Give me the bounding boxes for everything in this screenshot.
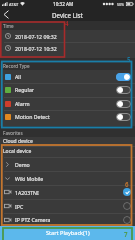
button[interactable]: Local device — [0, 146, 135, 157]
button[interactable]: Back — [0, 8, 13, 21]
staticText: 6 — [125, 180, 129, 188]
staticText: Demo — [15, 161, 30, 168]
staticText: Motion Detect — [15, 113, 50, 120]
button[interactable]: Demo — [0, 157, 135, 171]
button[interactable]: 1A203TNI — [0, 185, 135, 199]
staticText: Device List — [52, 11, 83, 19]
staticText: Alarm — [15, 100, 30, 107]
staticText: 50% — [117, 2, 125, 7]
staticText: 2018-07-12 10:32 — [15, 45, 57, 52]
staticText: 1A203TNI — [15, 189, 39, 196]
staticText: Cloud device — [3, 138, 33, 145]
staticText: 10:32 AM — [53, 1, 74, 7]
staticText: AT&T — [9, 2, 19, 7]
staticText: Favorites — [3, 130, 23, 136]
staticText: Wiki Mobile — [15, 175, 44, 182]
staticText: Start Playback(1) — [46, 229, 90, 237]
staticText: IP PTZ Camera — [15, 216, 51, 223]
staticText: Local device — [3, 148, 32, 155]
button[interactable]: 2018-07-12 10:32 — [0, 42, 135, 54]
button[interactable]: All — [0, 70, 135, 83]
button[interactable]: Start Playback(1) — [0, 226, 135, 240]
staticText: Regular — [15, 86, 34, 93]
button[interactable]: Wiki Mobile — [0, 171, 135, 185]
staticText: IPC — [15, 203, 24, 210]
button[interactable]: Alarm — [0, 97, 135, 110]
staticText: 5 — [127, 55, 131, 63]
button[interactable]: Cloud device — [0, 137, 135, 146]
staticText: 7 — [124, 230, 128, 238]
staticText: All — [15, 73, 21, 80]
button[interactable]: Motion Detect — [0, 110, 135, 123]
staticText: 2018-07-12 09:32 — [15, 33, 57, 40]
staticText: 4 — [65, 19, 69, 27]
button[interactable]: IPC — [0, 199, 135, 213]
button[interactable]: IP PTZ Camera — [0, 213, 135, 226]
staticText: Record Type — [3, 63, 30, 69]
staticText: Time — [3, 23, 14, 29]
button[interactable]: 2018-07-12 09:32 — [0, 30, 135, 42]
button[interactable]: Regular — [0, 83, 135, 96]
